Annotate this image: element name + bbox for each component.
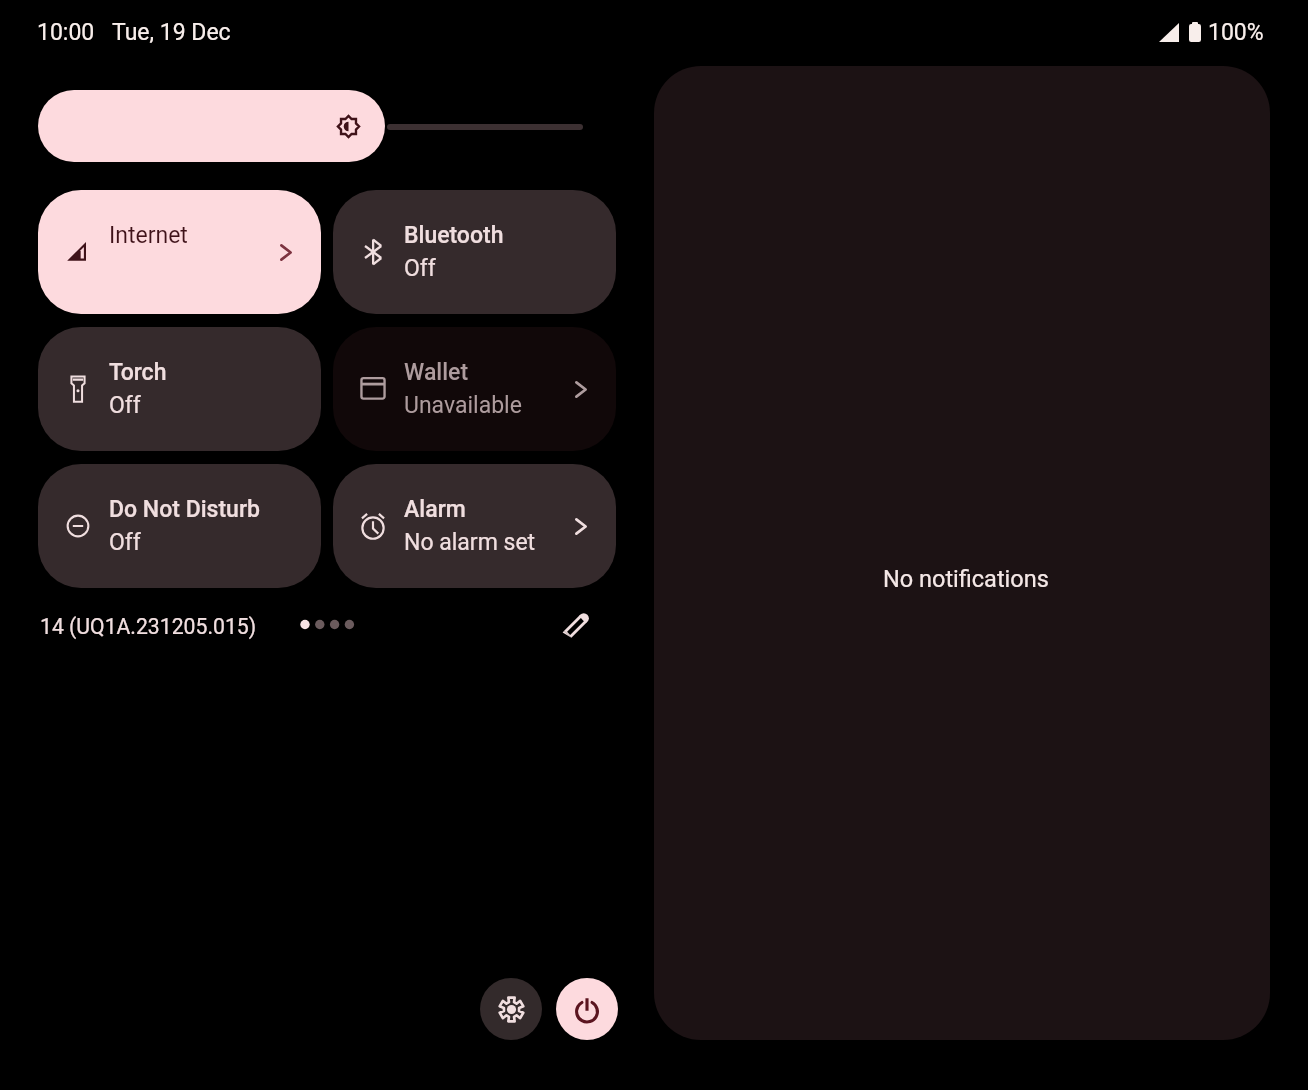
staticText: Off (404, 255, 436, 282)
staticText: 14 (UQ1A.231205.015) (40, 614, 257, 639)
staticText: Unavailable (404, 392, 522, 419)
staticText: Alarm (404, 496, 466, 523)
staticText: Bluetooth (404, 222, 504, 249)
staticText: Off (109, 529, 141, 556)
button[interactable]: Settings (480, 978, 542, 1040)
staticText: Tue, 19 Dec (112, 19, 231, 46)
staticText: Torch (109, 359, 167, 386)
button[interactable]: Brightness (38, 90, 385, 162)
button[interactable]: Power (556, 978, 618, 1040)
staticText: No notifications (883, 565, 1049, 593)
button[interactable]: Alarm (333, 464, 616, 588)
button[interactable]: Do Not Disturb (38, 464, 321, 588)
staticText: Off (109, 392, 141, 419)
staticText: 10:00 (37, 19, 95, 46)
button[interactable]: Internet (38, 190, 321, 314)
staticText: Internet (109, 222, 188, 249)
button[interactable]: Edit tiles (552, 601, 600, 649)
staticText: Do Not Disturb (109, 496, 260, 523)
staticText: 100% (1208, 19, 1264, 46)
button[interactable]: Torch (38, 327, 321, 451)
staticText: Wallet (404, 359, 469, 386)
staticText: No alarm set (404, 529, 536, 556)
button[interactable]: Bluetooth (333, 190, 616, 314)
button[interactable]: Wallet (333, 327, 616, 451)
